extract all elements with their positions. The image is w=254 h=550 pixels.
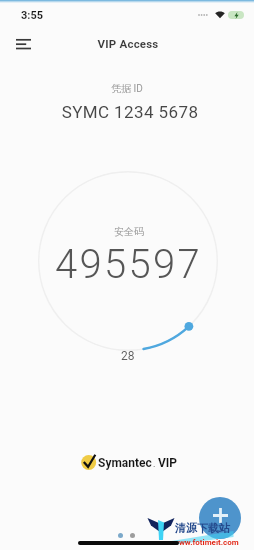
button[interactable]: Menu (4, 29, 42, 61)
staticText: 清源下载站 (175, 521, 230, 535)
staticText: VIP Access (1, 37, 254, 50)
staticText: 495597 (55, 241, 202, 288)
staticText: 安全码 (114, 225, 144, 238)
staticText: Symantec (98, 456, 152, 470)
staticText: www.fotimeit.com (173, 538, 239, 547)
staticText: 3:55 (21, 9, 44, 22)
staticText: 凭据 ID (0, 82, 254, 95)
button[interactable]: Add (199, 497, 241, 539)
staticText: SYMC 1234 5678 (3, 102, 254, 122)
staticText: VIP (155, 456, 178, 470)
staticText: 28 (121, 349, 135, 363)
staticText: . (153, 459, 156, 470)
